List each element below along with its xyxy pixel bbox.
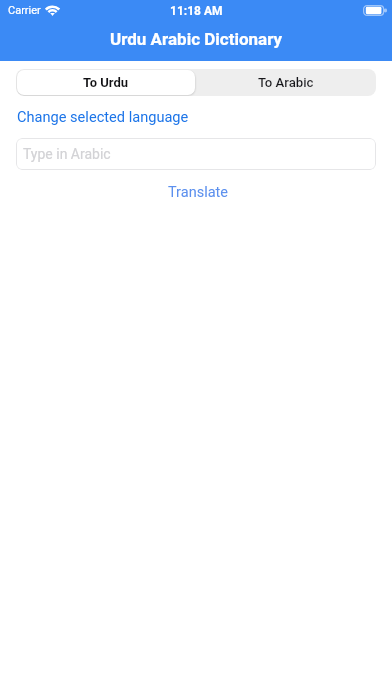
staticText: Translate: [168, 184, 228, 201]
other: Wi-Fi signal: [46, 4, 59, 16]
button[interactable]: Change selected language: [17, 108, 189, 125]
staticText: Type in Arabic: [23, 146, 111, 162]
staticText: Carrier: [8, 4, 41, 17]
staticText: Change selected language: [17, 108, 189, 125]
other: Battery full: [363, 5, 387, 16]
button[interactable]: Translate: [168, 184, 228, 201]
staticText: To Arabic: [258, 75, 314, 90]
button[interactable]: To Urdu: [17, 70, 195, 95]
button[interactable]: Type in Arabic: [16, 138, 376, 170]
staticText: Urdu Arabic Dictionary: [110, 29, 283, 49]
staticText: 11:18 AM: [170, 4, 223, 18]
staticText: To Urdu: [83, 75, 129, 90]
button[interactable]: To Arabic: [196, 69, 376, 96]
